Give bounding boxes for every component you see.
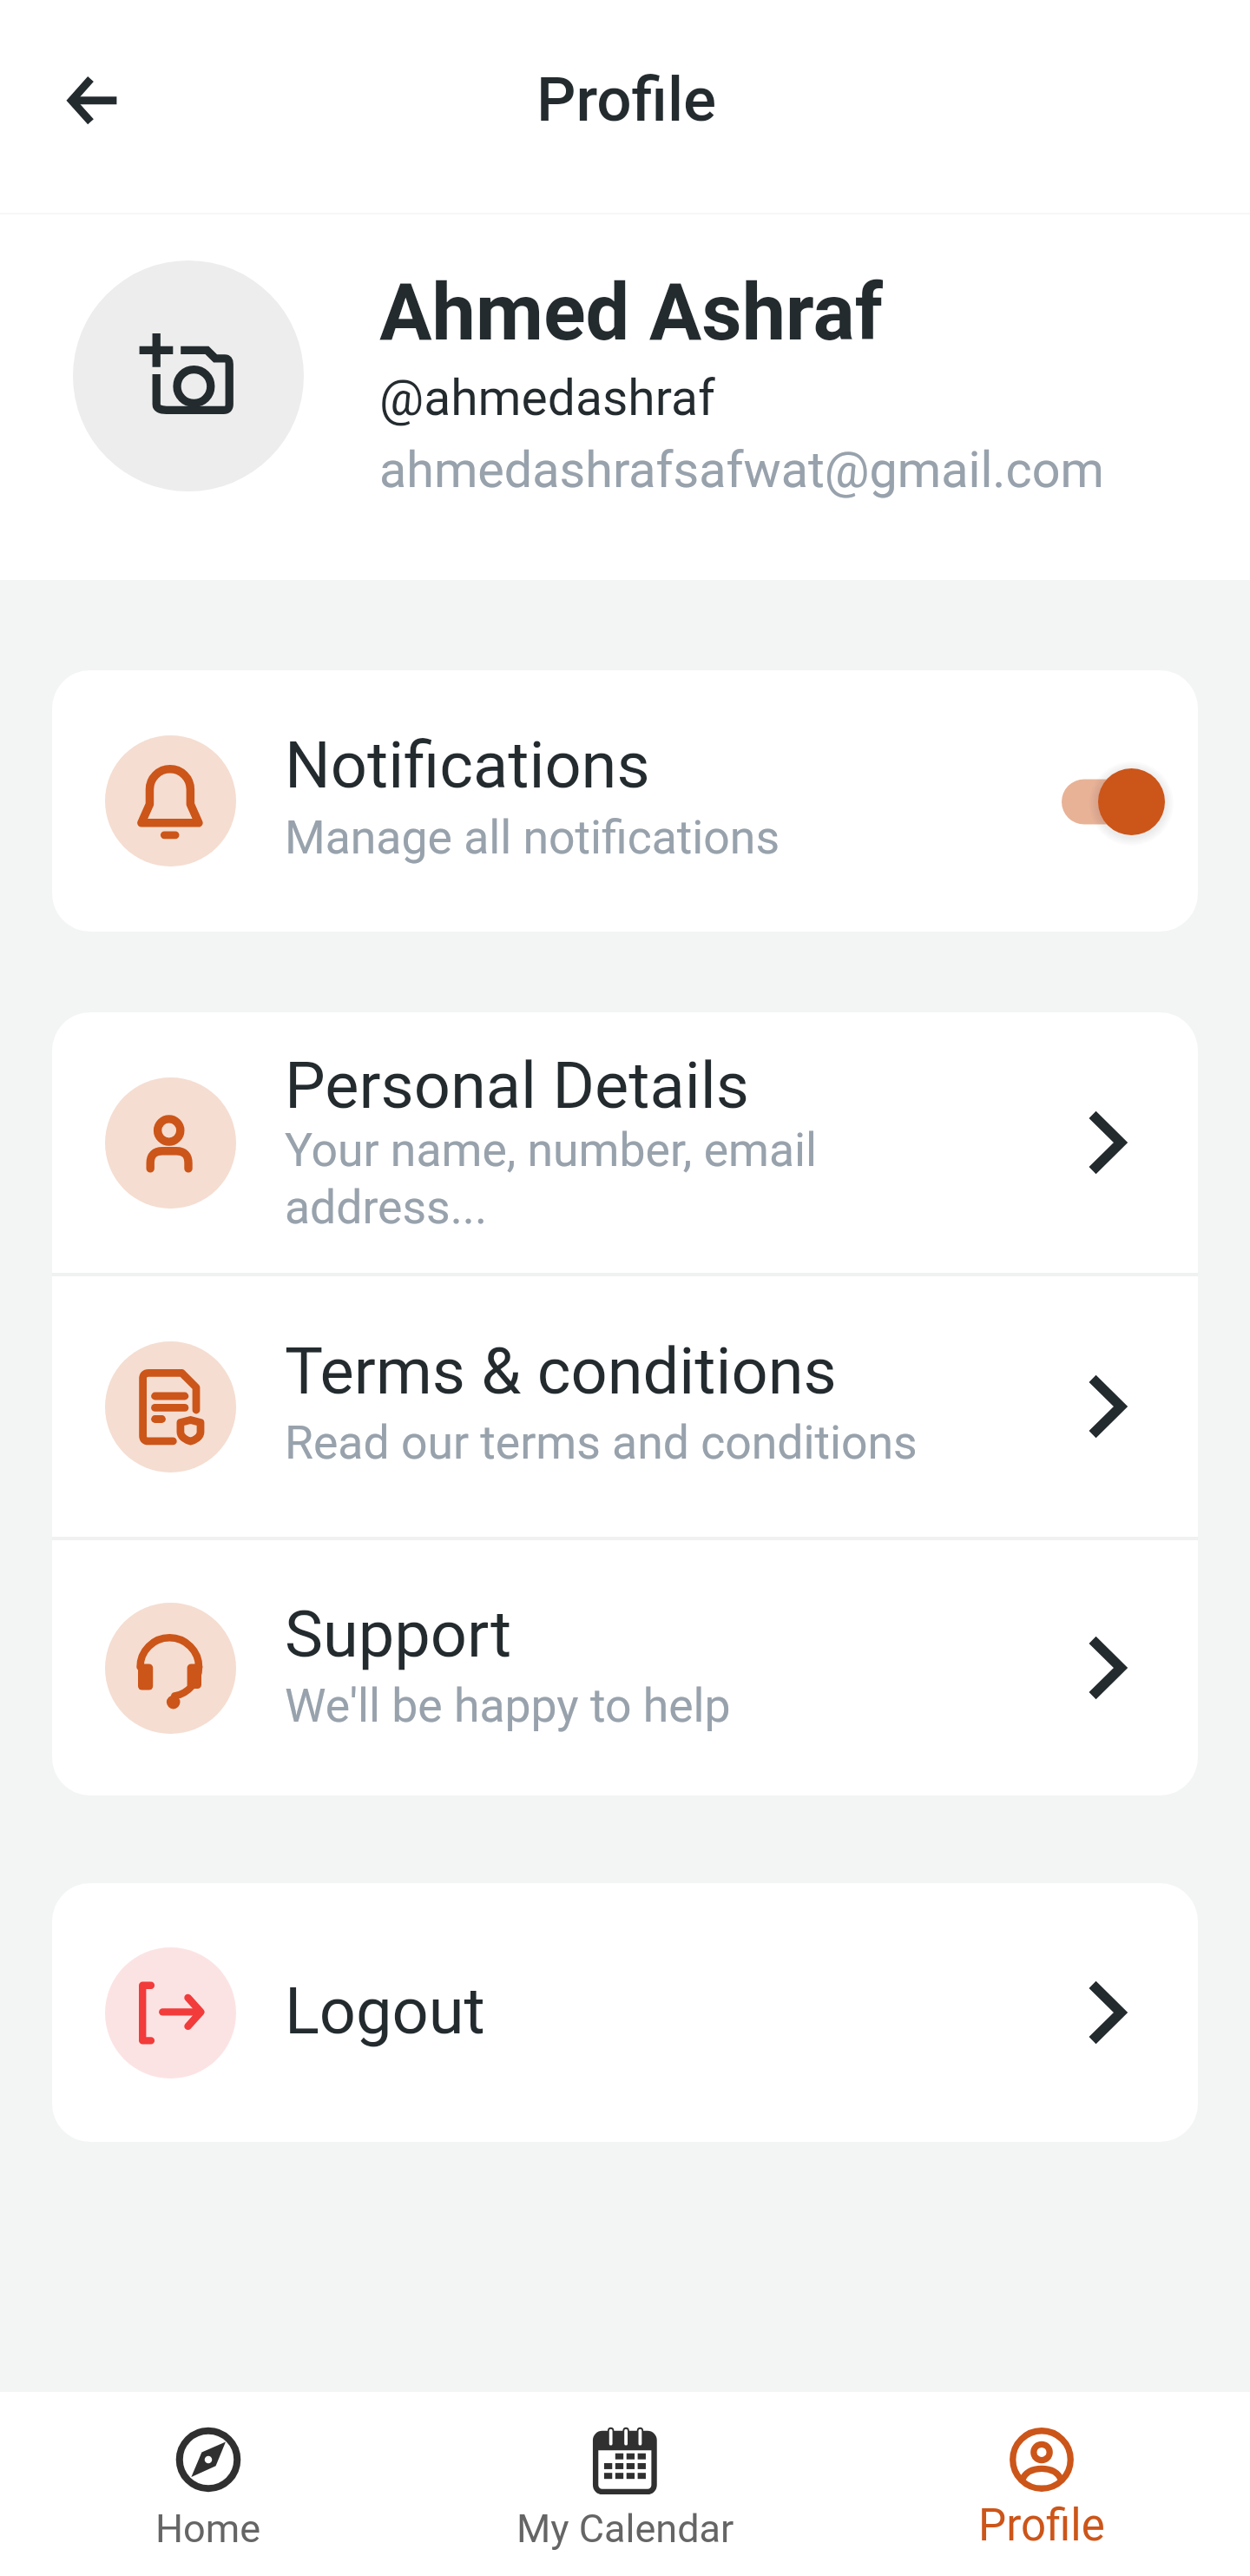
staticText: My Calendar [516, 2506, 734, 2552]
button[interactable]: Logout [52, 1883, 1198, 2142]
staticText: Personal Details [285, 1048, 749, 1123]
button[interactable]: Change profile photo [73, 260, 304, 491]
staticText: Home [155, 2506, 261, 2552]
staticText: @ahmedashraf [379, 369, 715, 427]
staticText: ahmedashrafsafwat@gmail.com [379, 441, 1104, 499]
staticText: Logout [285, 1973, 485, 2049]
button[interactable]: Terms & conditions [52, 1276, 1198, 1537]
staticText: Profile [978, 2500, 1105, 2552]
button[interactable]: Personal Details [52, 1012, 1198, 1273]
button[interactable]: My Calendar [417, 2392, 833, 2576]
staticText: Manage all notifications [285, 810, 979, 865]
staticText: Read our terms and conditions [285, 1415, 979, 1470]
button[interactable]: Profile [833, 2392, 1250, 2576]
staticText: We'll be happy to help [285, 1678, 979, 1733]
button[interactable]: Support [52, 1540, 1198, 1795]
staticText: Ahmed Ashraf [379, 267, 884, 359]
button[interactable]: Notifications [52, 670, 1198, 932]
staticText: Your name, number, email address... [285, 1123, 979, 1235]
staticText: Notifications [285, 728, 650, 803]
staticText: Support [285, 1597, 512, 1672]
staticText: Profile [536, 63, 717, 135]
button[interactable]: Notifications on [1062, 768, 1165, 835]
button[interactable]: Home [0, 2392, 417, 2576]
button[interactable]: Back [45, 55, 137, 147]
staticText: Terms & conditions [285, 1334, 837, 1409]
